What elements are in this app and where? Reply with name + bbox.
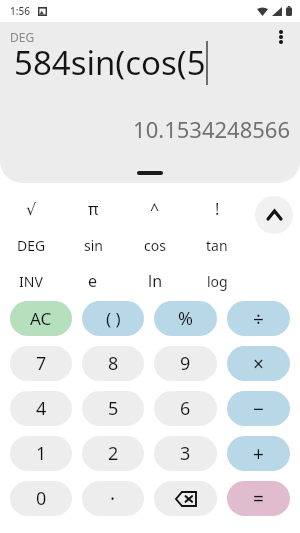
- staticText: 9: [180, 351, 191, 376]
- button[interactable]: 0: [10, 481, 72, 516]
- staticText: 7: [36, 351, 47, 376]
- staticText: DEG: [17, 236, 46, 255]
- staticText: 6: [180, 396, 191, 421]
- staticText: 10.1534248566: [133, 114, 290, 144]
- staticText: 4: [36, 396, 47, 421]
- button[interactable]: cos: [124, 231, 186, 259]
- staticText: +: [253, 441, 264, 467]
- button[interactable]: tan: [186, 231, 248, 259]
- button[interactable]: +: [227, 436, 290, 471]
- button[interactable]: INV: [0, 267, 62, 295]
- staticText: =: [253, 486, 264, 512]
- staticText: 0: [36, 486, 47, 511]
- button[interactable]: ( ): [82, 301, 144, 336]
- staticText: 2: [108, 441, 119, 466]
- button[interactable]: π: [62, 195, 124, 223]
- button[interactable]: 6: [154, 391, 217, 426]
- staticText: log: [207, 272, 228, 291]
- staticText: ln: [148, 270, 163, 292]
- button[interactable]: 3: [154, 436, 217, 471]
- staticText: 3: [180, 441, 191, 466]
- button[interactable]: sin: [62, 231, 124, 259]
- staticText: −: [253, 396, 264, 422]
- staticText: INV: [19, 272, 43, 291]
- button[interactable]: AC: [10, 301, 72, 336]
- staticText: ·: [110, 486, 116, 512]
- button[interactable]: 9: [154, 346, 217, 381]
- button[interactable]: √: [0, 195, 62, 223]
- staticText: 1:56: [10, 4, 30, 18]
- button[interactable]: ln: [124, 267, 186, 295]
- staticText: !: [215, 198, 220, 220]
- button[interactable]: ÷: [227, 301, 290, 336]
- staticText: %: [178, 306, 193, 331]
- button[interactable]: 1: [10, 436, 72, 471]
- staticText: √: [26, 200, 37, 219]
- staticText: ÷: [253, 306, 264, 332]
- staticText: 5: [108, 396, 119, 421]
- staticText: DEG: [10, 29, 35, 45]
- button[interactable]: Backspace: [154, 481, 217, 516]
- button[interactable]: ·: [82, 481, 144, 516]
- staticText: ^: [150, 198, 160, 220]
- staticText: 1: [36, 441, 47, 466]
- button[interactable]: 7: [10, 346, 72, 381]
- button[interactable]: ×: [227, 346, 290, 381]
- button[interactable]: 8: [82, 346, 144, 381]
- button[interactable]: 4: [10, 391, 72, 426]
- button[interactable]: Collapse scientific keypad: [255, 196, 293, 234]
- staticText: ×: [253, 351, 264, 377]
- button[interactable]: =: [227, 481, 290, 516]
- staticText: ( ): [106, 307, 121, 330]
- button[interactable]: −: [227, 391, 290, 426]
- staticText: AC: [30, 307, 52, 330]
- button[interactable]: More options: [272, 27, 290, 47]
- button[interactable]: 5: [82, 391, 144, 426]
- button[interactable]: %: [154, 301, 217, 336]
- staticText: 8: [108, 351, 119, 376]
- staticText: sin: [84, 236, 103, 255]
- button[interactable]: DEG: [0, 231, 62, 259]
- staticText: cos: [144, 236, 166, 255]
- staticText: 584sin(cos(5: [14, 40, 206, 85]
- staticText: π: [88, 198, 99, 220]
- staticText: tan: [206, 236, 228, 255]
- button[interactable]: !: [186, 195, 248, 223]
- button[interactable]: ^: [124, 195, 186, 223]
- staticText: e: [88, 270, 98, 292]
- button[interactable]: log: [186, 267, 248, 295]
- button[interactable]: 2: [82, 436, 144, 471]
- button[interactable]: e: [62, 267, 124, 295]
